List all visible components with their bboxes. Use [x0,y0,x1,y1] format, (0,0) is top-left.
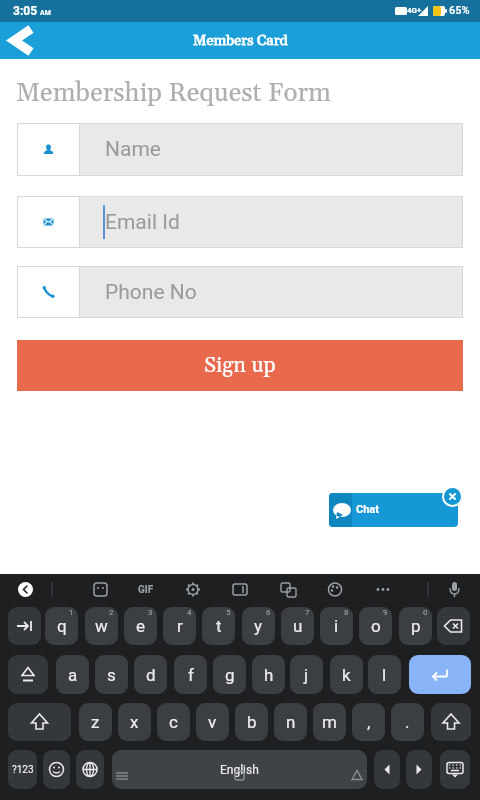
button[interactable] [43,750,70,789]
button[interactable]: c [157,703,190,741]
staticText: AM [40,9,51,17]
staticText: Members Card [193,32,288,50]
button[interactable]: x [118,703,151,741]
button[interactable]: j [290,655,323,694]
button[interactable]: a [56,655,89,694]
staticText: d [146,665,156,685]
staticText: s [107,665,116,685]
staticText: t [216,616,222,636]
staticText: Name [105,137,161,162]
staticText: z [91,712,100,732]
button[interactable]: q [45,607,78,645]
button[interactable]: Email Id [18,197,462,247]
staticText: 3 [148,608,153,617]
button[interactable]: e [124,607,157,645]
button[interactable]: Phone No [18,267,462,317]
staticText: , [367,712,371,732]
button[interactable]: y [242,607,275,645]
button[interactable] [8,607,41,645]
staticText: k [342,665,351,685]
button[interactable] [76,750,104,789]
staticText: b [247,712,257,732]
button[interactable]: p [399,607,432,645]
button[interactable]: o [359,607,392,645]
button[interactable]: g [213,655,246,694]
button[interactable]: f [174,655,207,694]
button[interactable] [18,582,33,597]
staticText: x [130,712,139,732]
button[interactable]: z [79,703,112,741]
staticText: u [293,616,303,636]
button[interactable]: b [235,703,268,741]
staticText: p [411,616,421,636]
staticText: y [254,616,263,636]
staticText: e [136,616,146,636]
button[interactable]: i [320,607,353,645]
staticText: Chat [356,503,379,516]
staticText: n [286,712,296,732]
button[interactable]: ?123 [8,750,37,789]
button[interactable] [442,486,463,507]
staticText: 65% [449,4,470,17]
staticText: 9 [383,608,388,617]
button[interactable] [0,22,50,59]
staticText: 2 [109,608,114,617]
button[interactable]: s [95,655,128,694]
staticText: Phone No [105,280,197,305]
button[interactable] [374,750,400,789]
button[interactable]: Name [18,124,462,175]
button[interactable] [437,607,470,645]
staticText: 7 [305,608,310,617]
button[interactable] [8,655,48,694]
button[interactable]: w [85,607,118,645]
button[interactable]: t [202,607,235,645]
staticText: 0 [423,608,428,617]
staticText: o [371,616,381,636]
staticText: 8 [344,608,349,617]
button[interactable]: English [112,750,367,789]
staticText: GIF [138,584,154,596]
button[interactable]: Chat [329,493,458,527]
staticText: . [405,712,410,732]
staticText: Email Id [105,210,180,235]
button[interactable]: h [252,655,285,694]
button[interactable]: l [368,655,401,694]
staticText: ?123 [12,764,34,776]
button[interactable]: . [391,703,424,741]
button[interactable]: m [313,703,346,741]
staticText: m [322,712,337,732]
staticText: w [95,616,108,636]
staticText: j [304,665,309,685]
staticText: r [177,616,183,636]
staticText: q [57,616,67,636]
button[interactable]: n [274,703,307,741]
staticText: 4 [187,608,192,617]
staticText: f [188,665,194,685]
button[interactable]: , [352,703,385,741]
staticText: i [334,616,339,636]
button[interactable]: Sign up [17,340,463,391]
button[interactable]: d [134,655,167,694]
staticText: a [68,665,78,685]
button[interactable] [406,750,432,789]
button[interactable] [8,703,71,741]
staticText: h [264,665,274,685]
staticText: v [208,712,217,732]
button[interactable]: u [281,607,314,645]
button[interactable]: k [330,655,363,694]
button[interactable] [440,750,470,789]
button[interactable]: v [196,703,229,741]
staticText: Sign up [204,352,276,379]
staticText: 3:05 [13,4,38,18]
staticText: 6 [266,608,271,617]
staticText: g [225,665,235,685]
button[interactable] [409,655,471,694]
staticText: c [169,712,178,732]
staticText: English [220,763,259,777]
staticText: 4G+ [407,6,422,15]
button[interactable] [431,703,471,741]
button[interactable]: r [163,607,196,645]
staticText: 1 [69,608,74,617]
staticText: l [382,665,387,685]
staticText: 5 [226,608,231,617]
